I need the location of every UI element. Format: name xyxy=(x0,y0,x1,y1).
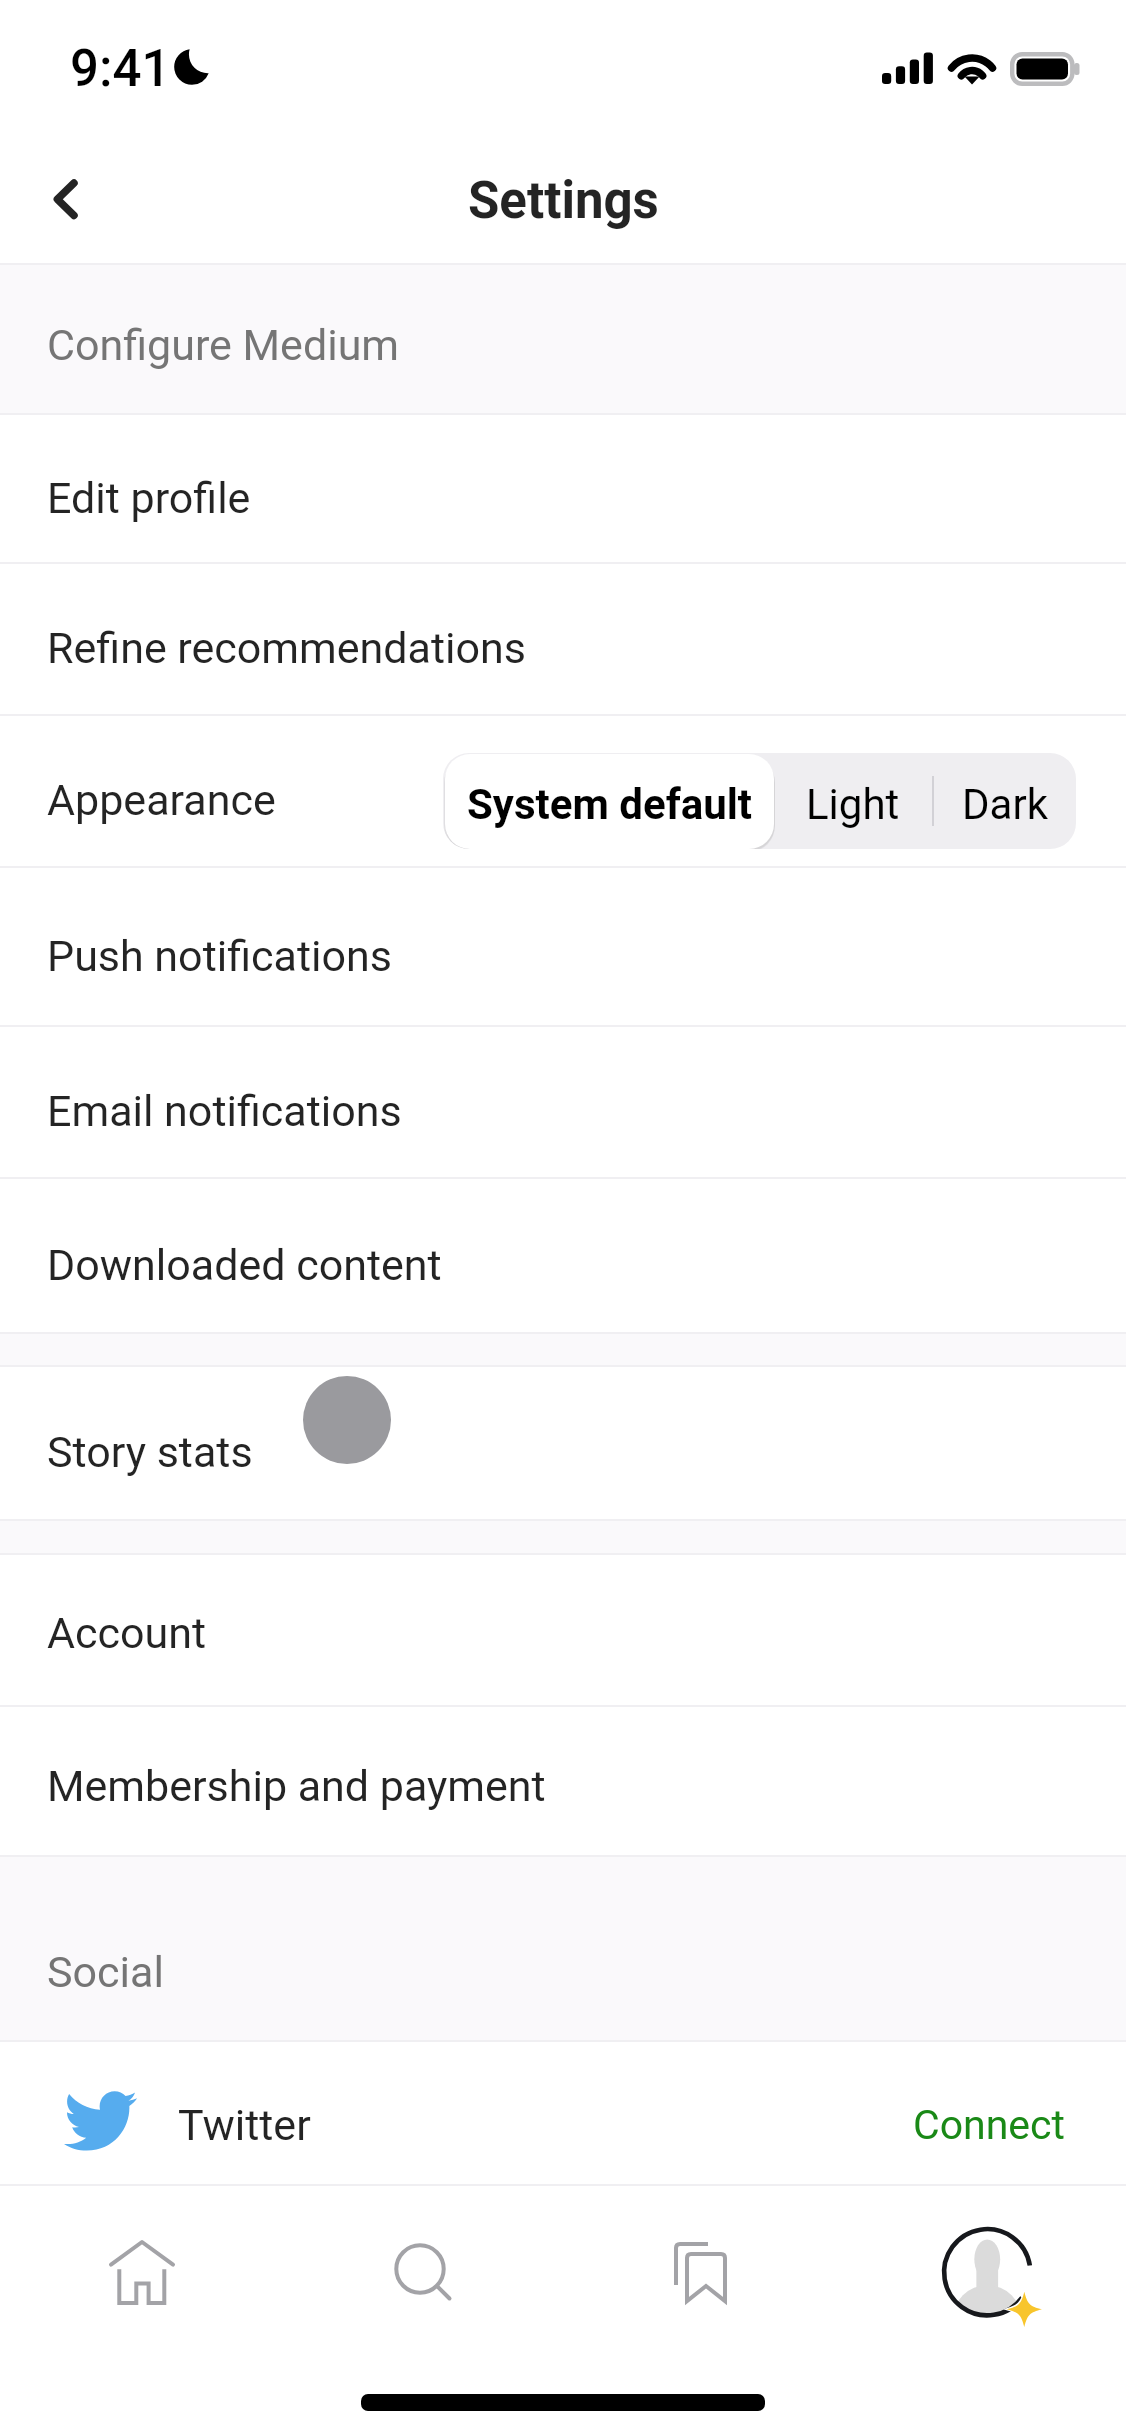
button[interactable]: Story stats xyxy=(0,1367,1126,1519)
staticText: System default xyxy=(467,780,753,829)
button[interactable]: System default xyxy=(445,754,774,849)
staticText: Push notifications xyxy=(47,931,392,981)
staticText: Light xyxy=(806,780,900,829)
button[interactable]: Search xyxy=(281,2186,562,2358)
staticText: Social xyxy=(47,1947,164,1997)
button[interactable]: Bookmarks xyxy=(562,2186,844,2358)
staticText: Configure Medium xyxy=(47,320,400,370)
staticText: Edit profile xyxy=(47,473,251,523)
staticText: Story stats xyxy=(47,1427,253,1477)
button[interactable]: Email notifications xyxy=(0,1027,1126,1177)
button[interactable]: Home xyxy=(0,2186,281,2358)
button[interactable]: Twitter xyxy=(0,2042,1126,2184)
staticText: Twitter xyxy=(178,2100,311,2150)
staticText: Email notifications xyxy=(47,1086,402,1136)
staticText: Account xyxy=(47,1608,207,1658)
button[interactable]: Membership and payment xyxy=(0,1707,1126,1855)
button[interactable]: Refine recommendations xyxy=(0,564,1126,714)
staticText: Connect xyxy=(913,2101,1065,2149)
button[interactable]: Account xyxy=(0,1555,1126,1705)
staticText: 9:41 xyxy=(70,39,171,99)
staticText: Downloaded content xyxy=(47,1240,442,1290)
staticText: Appearance xyxy=(47,775,276,825)
button[interactable]: Back xyxy=(20,152,110,242)
staticText: Membership and payment xyxy=(47,1761,546,1811)
staticText: Dark xyxy=(962,780,1048,829)
button[interactable]: Dark xyxy=(934,753,1076,849)
staticText: Settings xyxy=(468,171,659,231)
button[interactable]: Edit profile xyxy=(0,415,1126,562)
button[interactable]: Downloaded content xyxy=(0,1179,1126,1332)
button[interactable]: Profile xyxy=(844,2186,1126,2358)
button[interactable]: Light xyxy=(773,753,932,849)
staticText: Refine recommendations xyxy=(47,623,526,673)
button[interactable]: Push notifications xyxy=(0,868,1126,1025)
